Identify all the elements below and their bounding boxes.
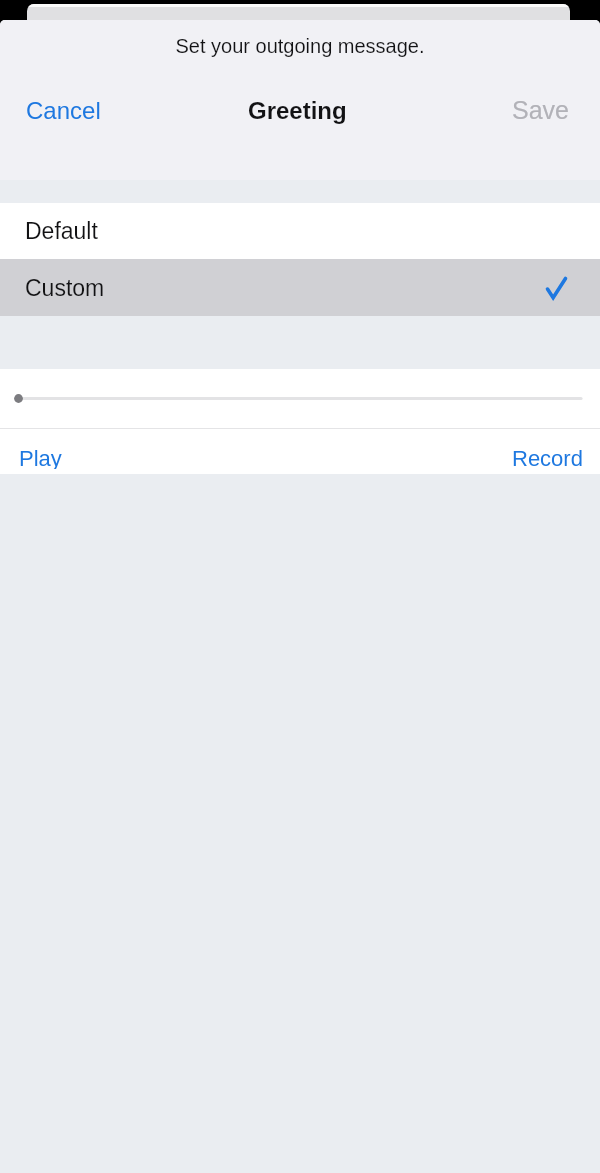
button[interactable]: Play (0, 429, 74, 474)
staticText: Play (19, 446, 62, 469)
staticText: Record (512, 446, 583, 469)
button[interactable]: Playback position (0, 369, 600, 428)
button[interactable]: Save (498, 88, 600, 132)
staticText: Save (512, 96, 569, 124)
staticText: Greeting (248, 97, 347, 124)
staticText: Custom (25, 275, 105, 301)
button[interactable]: Default (0, 203, 600, 259)
staticText: Set your outgoing message. (175, 35, 425, 57)
button[interactable]: Record (500, 429, 600, 474)
staticText: Cancel (26, 97, 101, 124)
button[interactable]: Custom (0, 259, 600, 316)
other: Selected (546, 277, 567, 299)
button[interactable]: Cancel (0, 89, 115, 132)
staticText: Default (25, 218, 98, 244)
